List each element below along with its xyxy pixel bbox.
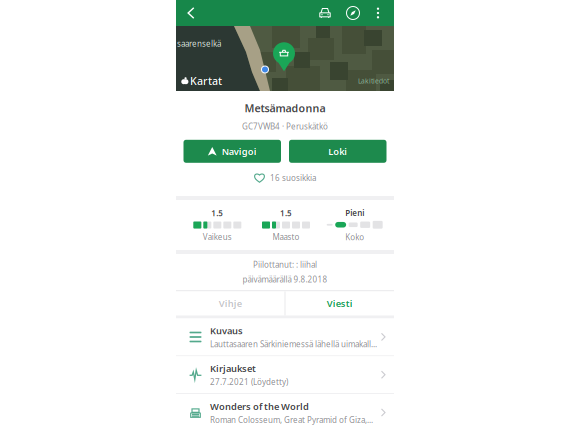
staticText: Pieni [345, 208, 364, 218]
staticText: Koko [345, 232, 364, 242]
staticText: Maasto [272, 231, 299, 242]
staticText: Kirjaukset [210, 362, 256, 375]
staticText: Metsämadonna [244, 101, 325, 115]
staticText: 1.5 [280, 208, 292, 218]
staticText: 1.5 [211, 208, 223, 218]
staticText: Lauttasaaren Särkiniemessä lähellä uimak… [210, 339, 377, 349]
button[interactable]: Driving directions [311, 0, 339, 26]
button[interactable]: Vihje [176, 291, 285, 315]
button[interactable]: Viesti [285, 291, 394, 315]
staticText: Loki [328, 145, 347, 157]
staticText: Wonders of the World [210, 400, 309, 412]
staticText: Kartat [190, 74, 222, 88]
staticText: Viesti [327, 297, 353, 310]
staticText: 27.7.2021 (Löydetty) [210, 377, 288, 387]
staticText: Lakitiedot [358, 76, 389, 85]
staticText: Navigoi [222, 145, 257, 157]
button[interactable]: Back [176, 0, 206, 26]
button[interactable]: Kuvaus [176, 318, 394, 355]
button[interactable]: Loki [289, 140, 386, 163]
button[interactable]: Kirjaukset [176, 356, 394, 393]
staticText: 16 suosikkia [270, 172, 316, 183]
staticText: päivämäärällä 9.8.2018 [242, 274, 327, 285]
staticText: Piilottanut: : liihal [253, 259, 317, 270]
button[interactable]: 16 suosikkia [176, 163, 394, 193]
staticText: GC7VWB4 · Peruskätkö [242, 121, 328, 132]
staticText: saarenselkä [177, 38, 221, 49]
staticText: Kuvaus [210, 324, 243, 337]
button[interactable]: Compass [339, 0, 367, 26]
staticText: Vihje [219, 297, 242, 310]
staticText: Roman Colosseum, Great Pyramid of Giza,.… [210, 414, 373, 425]
button[interactable]: More options [367, 0, 389, 26]
button[interactable]: Navigoi [183, 140, 281, 163]
button[interactable]: Wonders of the World [176, 394, 394, 428]
staticText: Vaikeus [203, 231, 232, 242]
